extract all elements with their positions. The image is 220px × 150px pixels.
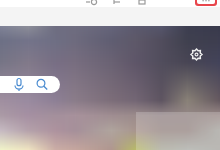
button[interactable] bbox=[0, 76, 60, 93]
button[interactable]: More options bbox=[197, 0, 215, 4]
button[interactable]: Customize bbox=[190, 48, 203, 61]
